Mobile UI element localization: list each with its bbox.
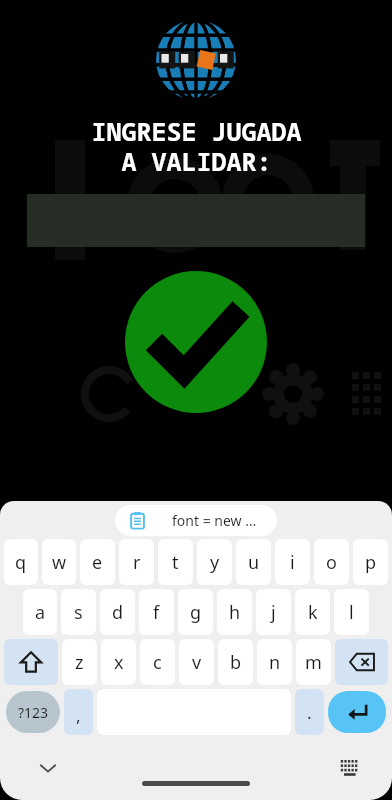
staticText: font = new … (172, 511, 257, 530)
button[interactable]: , (64, 689, 93, 735)
button[interactable]: ?123 (6, 691, 60, 733)
button[interactable]: i (275, 539, 310, 585)
staticText: e (92, 550, 103, 575)
staticText: o (326, 550, 337, 575)
staticText: x (114, 650, 124, 675)
button[interactable]: Hide keyboard (32, 752, 64, 784)
button[interactable]: l (334, 589, 369, 635)
button[interactable]: x (101, 639, 136, 685)
button[interactable]: y (197, 539, 232, 585)
staticText: v (192, 650, 202, 675)
staticText: b (230, 650, 242, 675)
staticText: w (52, 550, 67, 575)
button[interactable]: m (296, 639, 331, 685)
staticText: z (75, 650, 84, 675)
staticText: r (133, 550, 141, 575)
staticText: m (305, 650, 322, 675)
staticText: n (269, 650, 281, 675)
button[interactable]: c (140, 639, 175, 685)
button[interactable]: q (4, 539, 38, 585)
button[interactable]: k (295, 589, 330, 635)
staticText: , (76, 704, 81, 727)
button[interactable]: Validar (125, 271, 267, 413)
button[interactable]: Switch keyboard (334, 752, 366, 784)
button[interactable]: h (217, 589, 252, 635)
staticText: d (112, 600, 124, 625)
staticText: a (35, 600, 46, 625)
staticText: c (153, 650, 162, 675)
button[interactable]: Shift (4, 639, 58, 685)
staticText: f (153, 600, 160, 625)
staticText: INGRESE JUGADA A VALIDAR: (91, 114, 302, 179)
button[interactable]: e (80, 539, 115, 585)
staticText: . (307, 701, 312, 724)
button[interactable]: a (23, 589, 57, 635)
button[interactable]: Backspace (335, 639, 388, 685)
button[interactable]: s (61, 589, 96, 635)
button[interactable]: Enter (328, 691, 386, 733)
staticText: k (308, 600, 318, 625)
staticText: s (74, 600, 83, 625)
button[interactable]: n (257, 639, 292, 685)
button[interactable]: w (42, 539, 76, 585)
button[interactable]: g (178, 589, 213, 635)
button[interactable]: font = new … (115, 505, 277, 536)
button[interactable]: j (256, 589, 291, 635)
staticText: ?123 (18, 703, 49, 722)
staticText: l (349, 600, 354, 625)
button[interactable]: r (119, 539, 154, 585)
button[interactable]: d (100, 589, 135, 635)
staticText: g (190, 600, 202, 625)
staticText: y (210, 550, 220, 575)
button[interactable]: b (218, 639, 253, 685)
staticText: h (229, 600, 241, 625)
button[interactable]: u (236, 539, 271, 585)
button[interactable]: . (295, 689, 324, 735)
staticText: q (15, 550, 27, 575)
staticText: i (290, 550, 295, 575)
staticText: p (365, 550, 377, 575)
button[interactable]: o (314, 539, 349, 585)
button[interactable]: p (353, 539, 388, 585)
button[interactable]: f (139, 589, 174, 635)
button[interactable]: v (179, 639, 214, 685)
staticText: t (172, 550, 179, 575)
staticText: j (271, 600, 276, 625)
button[interactable]: t (158, 539, 193, 585)
button[interactable]: z (62, 639, 97, 685)
staticText: u (248, 550, 260, 575)
